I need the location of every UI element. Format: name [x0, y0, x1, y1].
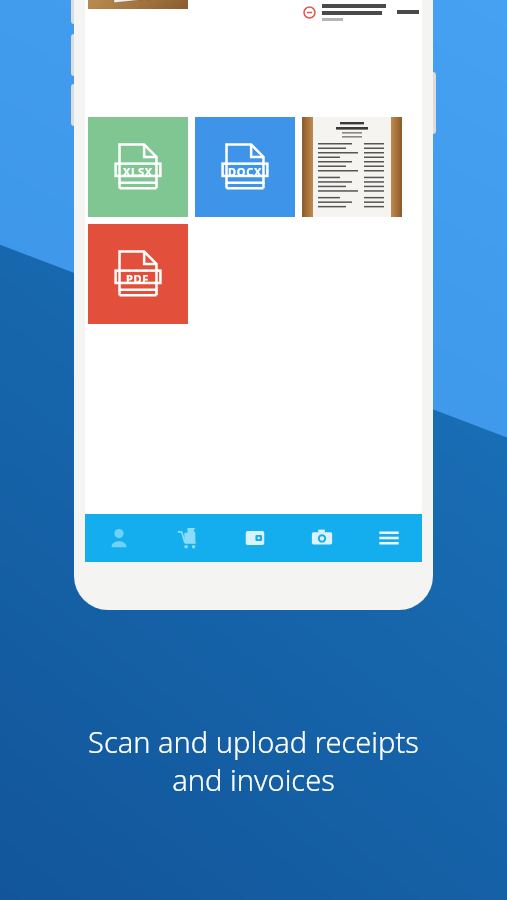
button[interactable]: Purchases — [153, 514, 221, 562]
button[interactable]: Profile — [85, 514, 153, 562]
button[interactable]: Menu — [355, 514, 422, 562]
button[interactable]: DOCX — [195, 117, 295, 217]
button[interactable]: Wallet — [221, 514, 288, 562]
staticText: XLSX — [123, 164, 153, 179]
staticText: DOCX — [228, 164, 262, 179]
staticText: PDF — [126, 271, 150, 286]
button[interactable] — [302, 117, 402, 217]
button[interactable]: PDF — [88, 224, 188, 324]
button[interactable]: XLSX — [88, 117, 188, 217]
button[interactable] — [88, 0, 188, 9]
button[interactable] — [303, 0, 419, 27]
staticText: Scan and upload receipts and invoices — [88, 722, 419, 799]
button[interactable]: Camera — [288, 514, 355, 562]
